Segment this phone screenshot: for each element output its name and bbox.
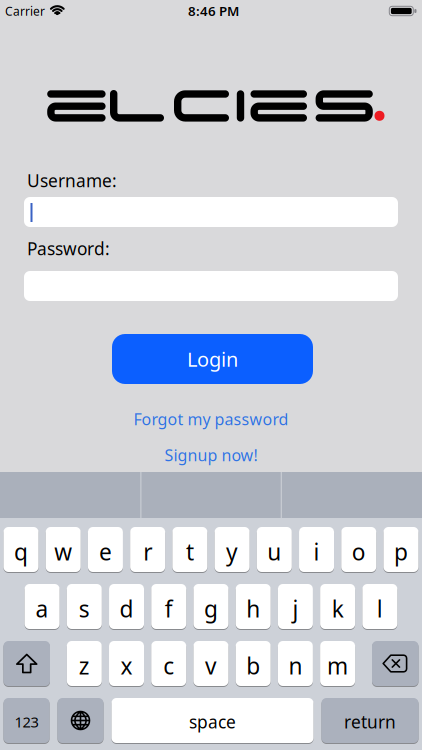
button[interactable]: a bbox=[25, 584, 60, 629]
button[interactable]: return bbox=[321, 698, 418, 743]
staticText: z bbox=[79, 651, 90, 681]
staticText: j bbox=[292, 594, 298, 624]
button[interactable]: x bbox=[109, 641, 144, 686]
staticText: m bbox=[327, 651, 348, 681]
staticText: 8:46 PM bbox=[188, 2, 239, 20]
staticText: w bbox=[54, 537, 72, 567]
staticText: q bbox=[14, 537, 28, 567]
staticText: Username: bbox=[27, 169, 117, 192]
button[interactable]: k bbox=[320, 584, 355, 629]
button[interactable]: 123 bbox=[3, 698, 49, 743]
staticText: p bbox=[394, 537, 408, 567]
button[interactable]: n bbox=[278, 641, 313, 686]
button[interactable]: Forgot my password bbox=[133, 408, 288, 430]
button[interactable]: Signup now! bbox=[164, 444, 257, 466]
staticText: k bbox=[332, 594, 344, 624]
button[interactable]: c bbox=[151, 641, 186, 686]
staticText: g bbox=[204, 594, 218, 624]
button[interactable]: v bbox=[193, 641, 228, 686]
button[interactable]: space bbox=[111, 698, 313, 743]
button[interactable]: b bbox=[236, 641, 271, 686]
staticText: b bbox=[246, 651, 260, 681]
staticText: t bbox=[186, 537, 194, 567]
button[interactable]: e bbox=[88, 527, 123, 572]
button[interactable]: f bbox=[151, 584, 186, 629]
staticText: Login bbox=[187, 346, 238, 372]
button[interactable]: Login bbox=[112, 334, 313, 384]
staticText: h bbox=[246, 594, 260, 624]
staticText: v bbox=[205, 651, 217, 681]
staticText: Password: bbox=[27, 237, 110, 260]
button[interactable]: o bbox=[341, 527, 376, 572]
button[interactable]: l bbox=[362, 584, 397, 629]
button[interactable]: Delete bbox=[372, 641, 418, 686]
button[interactable]: w bbox=[46, 527, 81, 572]
button[interactable]: u bbox=[257, 527, 292, 572]
staticText: u bbox=[267, 537, 281, 567]
staticText: e bbox=[99, 537, 112, 567]
staticText: l bbox=[377, 594, 383, 624]
button[interactable]: j bbox=[278, 584, 313, 629]
staticText: space bbox=[189, 710, 236, 733]
button[interactable]: d bbox=[109, 584, 144, 629]
staticText: o bbox=[352, 537, 366, 567]
button[interactable]: i bbox=[299, 527, 334, 572]
staticText: f bbox=[165, 594, 173, 624]
staticText: n bbox=[288, 651, 302, 681]
staticText: c bbox=[163, 651, 174, 681]
button[interactable]: y bbox=[215, 527, 250, 572]
staticText: d bbox=[119, 594, 133, 624]
button[interactable]: q bbox=[3, 527, 38, 572]
staticText: Signup now! bbox=[164, 444, 257, 466]
staticText: Forgot my password bbox=[133, 408, 288, 430]
staticText: Carrier bbox=[5, 3, 45, 19]
button[interactable]: Next keyboard bbox=[57, 698, 103, 743]
button[interactable]: z bbox=[67, 641, 102, 686]
button[interactable]: h bbox=[236, 584, 271, 629]
staticText: a bbox=[36, 594, 49, 624]
button[interactable]: r bbox=[130, 527, 165, 572]
staticText: i bbox=[313, 537, 319, 567]
staticText: 123 bbox=[14, 712, 38, 731]
staticText: return bbox=[344, 710, 396, 733]
button[interactable]: m bbox=[320, 641, 355, 686]
staticText: y bbox=[226, 537, 238, 567]
button[interactable]: p bbox=[383, 527, 418, 572]
staticText: x bbox=[120, 651, 132, 681]
staticText: s bbox=[79, 594, 90, 624]
staticText: r bbox=[143, 537, 152, 567]
button[interactable]: t bbox=[172, 527, 207, 572]
button[interactable]: Username bbox=[24, 197, 398, 227]
button[interactable]: g bbox=[193, 584, 228, 629]
button[interactable]: Shift bbox=[3, 641, 50, 686]
button[interactable]: s bbox=[67, 584, 102, 629]
